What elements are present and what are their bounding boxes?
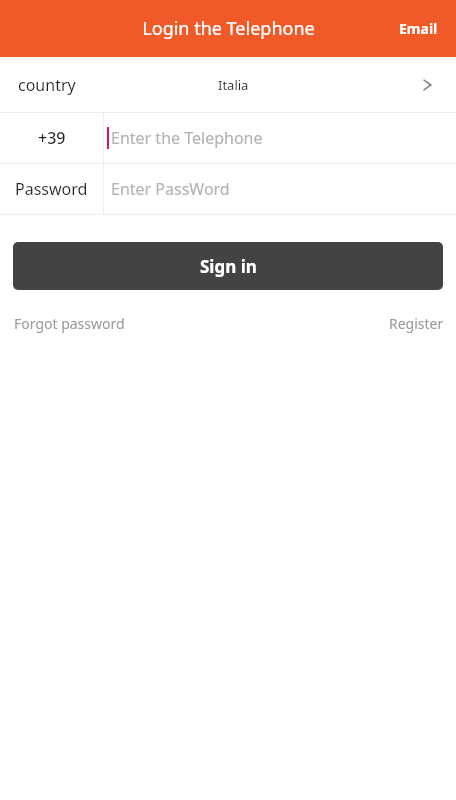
button[interactable]: Register [381, 310, 456, 337]
staticText: Enter PassWord [111, 178, 230, 200]
button[interactable]: Sign in [13, 242, 443, 290]
staticText: Italia [218, 76, 249, 94]
staticText: Login the Telephone [142, 16, 315, 41]
staticText: Enter the Telephone [111, 127, 263, 149]
staticText: +39 [38, 127, 66, 149]
button[interactable]: Enter PassWord [104, 164, 456, 214]
staticText: Forgot password [14, 314, 125, 333]
button[interactable]: Forgot password [0, 310, 133, 337]
staticText: country [18, 74, 76, 96]
button[interactable]: country [0, 57, 456, 112]
staticText: Email [399, 19, 438, 38]
staticText: Password [15, 178, 88, 200]
staticText: Sign in [200, 255, 257, 278]
staticText: Register [389, 314, 444, 333]
button[interactable]: Email [381, 5, 456, 52]
button[interactable]: +39 [0, 113, 103, 163]
button[interactable]: Enter the Telephone [104, 113, 456, 163]
